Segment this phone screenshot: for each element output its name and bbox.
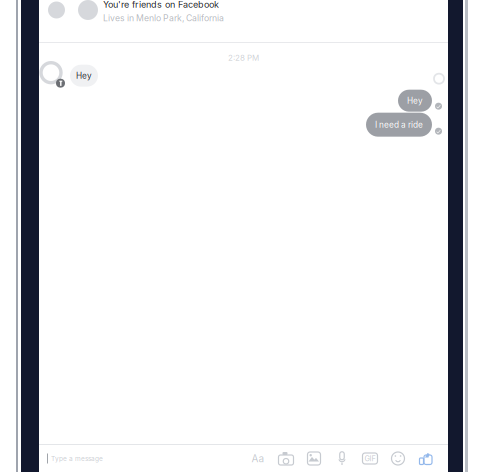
staticText: Hey: [407, 96, 423, 106]
staticText: GIF: [364, 454, 375, 463]
button[interactable]: Aa: [244, 446, 272, 470]
button[interactable]: Photos: [300, 446, 328, 470]
staticText: Aa: [251, 452, 264, 465]
staticText: Type a message: [51, 454, 103, 462]
button[interactable]: Voice message: [328, 446, 356, 470]
staticText: Hey: [76, 71, 92, 81]
staticText: 2:28 PM: [228, 53, 259, 63]
button[interactable]: GIF: [356, 446, 384, 470]
staticText: I need a ride: [375, 120, 423, 130]
button[interactable]: Camera: [272, 446, 300, 470]
staticText: You're friends on Facebook: [103, 0, 219, 10]
button[interactable]: Stickers: [384, 446, 412, 470]
button[interactable]: Send a like: [412, 446, 440, 470]
staticText: Lives in Menlo Park, California: [103, 13, 224, 23]
